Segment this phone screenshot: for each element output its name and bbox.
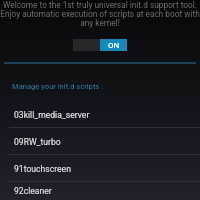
- button[interactable]: Enable init.d support: [73, 39, 127, 51]
- button[interactable]: 03kill_media_server: [0, 101, 200, 128]
- staticText: Welcome to the 1st truly universal init.…: [0, 0, 200, 28]
- staticText: 91touchscreen: [14, 164, 71, 174]
- staticText: 03kill_media_server: [14, 110, 90, 120]
- staticText: Manage your init.d scripts :: [12, 82, 104, 91]
- staticText: 92cleaner: [14, 186, 52, 196]
- button[interactable]: 09RW_turbo: [0, 128, 200, 155]
- button[interactable]: 91touchscreen: [0, 155, 200, 182]
- button[interactable]: 92cleaner: [0, 182, 200, 200]
- staticText: 09RW_turbo: [14, 137, 61, 147]
- staticText: ON: [108, 41, 120, 50]
